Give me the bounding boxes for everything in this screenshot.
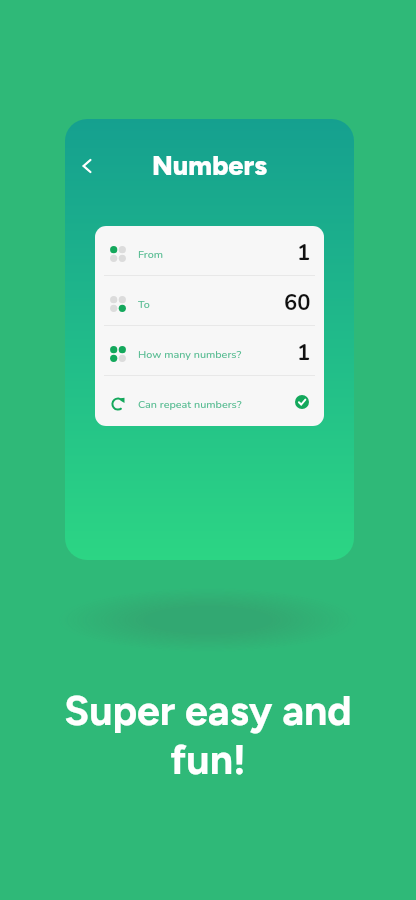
staticText: To: [138, 297, 150, 312]
button[interactable]: Can repeat numbers?: [95, 376, 324, 426]
staticText: Super easy and fun!: [0, 686, 416, 784]
staticText: 60: [284, 288, 311, 318]
button[interactable]: Back: [68, 147, 106, 185]
staticText: 1: [297, 238, 311, 268]
button[interactable]: Toggle repeat numbers: [295, 395, 309, 409]
staticText: How many numbers?: [138, 347, 242, 362]
button[interactable]: To: [95, 276, 324, 326]
staticText: From: [138, 247, 164, 262]
button[interactable]: How many numbers?: [95, 326, 324, 376]
staticText: Numbers: [152, 149, 268, 181]
staticText: 1: [297, 338, 311, 368]
staticText: Can repeat numbers?: [138, 397, 242, 412]
button[interactable]: From: [95, 226, 324, 276]
